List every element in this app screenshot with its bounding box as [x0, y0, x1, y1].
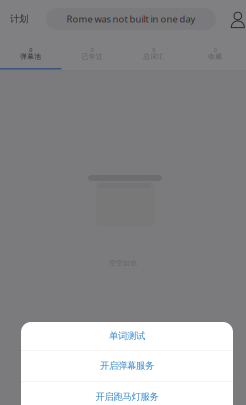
staticText: 0 — [29, 46, 32, 54]
staticText: Rome was not built in one day — [66, 13, 195, 25]
staticText: 0 — [214, 46, 217, 54]
staticText: 开启跑马灯服务 — [95, 391, 158, 402]
button[interactable]: 开启弹幕服务 — [21, 350, 233, 381]
staticText: 开启弹幕服务 — [100, 360, 154, 371]
button[interactable]: 开启跑马灯服务 — [21, 381, 233, 405]
button[interactable]: Profile — [231, 10, 246, 27]
staticText: 已学过 — [82, 52, 103, 61]
staticText: 0 — [152, 46, 155, 54]
button[interactable]: 单词测试 — [21, 322, 233, 350]
staticText: 总词汇 — [143, 52, 164, 61]
button[interactable]: 0 — [123, 38, 184, 69]
button[interactable]: 0 — [0, 38, 61, 69]
staticText: 单词测试 — [109, 330, 145, 342]
button[interactable]: 0 — [184, 38, 246, 69]
staticText: 空空如也 — [109, 259, 137, 267]
staticText: 0 — [91, 46, 94, 54]
staticText: 弹幕池 — [20, 52, 41, 61]
button[interactable]: 0 — [61, 38, 123, 69]
staticText: 计划 — [10, 13, 28, 25]
staticText: 收藏 — [208, 52, 222, 61]
